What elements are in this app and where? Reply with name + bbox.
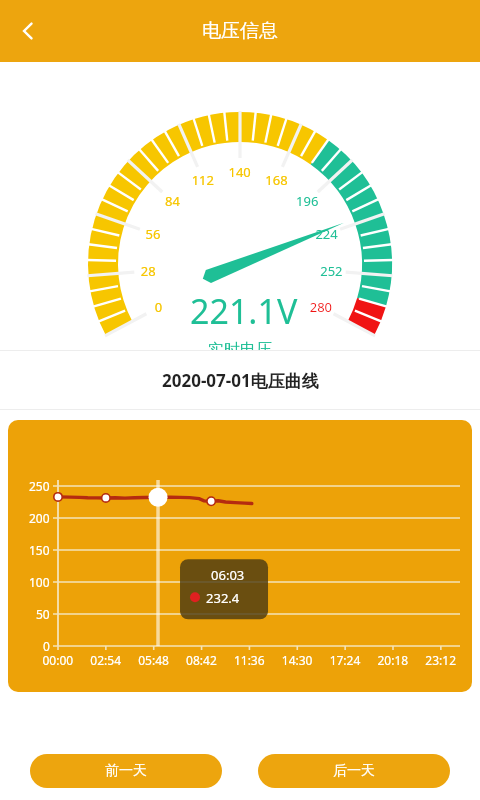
staticText: 2020-07-01电压曲线: [162, 369, 319, 392]
staticText: 后一天: [333, 762, 375, 780]
staticText: 电压信息: [202, 19, 278, 43]
button[interactable]: 后一天: [258, 754, 450, 788]
button[interactable]: Back: [6, 9, 50, 53]
staticText: 前一天: [105, 762, 147, 780]
button[interactable]: 前一天: [30, 754, 222, 788]
